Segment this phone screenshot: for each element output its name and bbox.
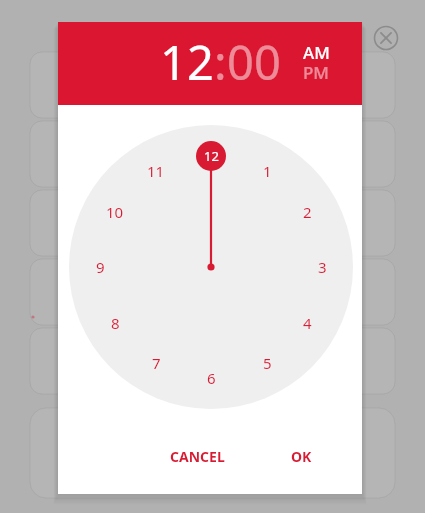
button[interactable]: OK (291, 447, 312, 466)
staticText: CANCEL (170, 447, 225, 466)
button[interactable]: 00 (227, 30, 281, 94)
button[interactable]: 11 (142, 161, 169, 181)
button[interactable]: CANCEL (170, 447, 225, 466)
button[interactable]: PM (303, 61, 329, 84)
staticText: 2 (303, 202, 312, 222)
button[interactable]: 9 (91, 257, 109, 277)
staticText: 5 (263, 353, 272, 373)
staticText: PM (303, 61, 329, 84)
staticText: 6 (207, 368, 216, 388)
button[interactable]: 12 (160, 30, 214, 94)
staticText: 9 (96, 257, 105, 277)
staticText: 11 (147, 161, 165, 181)
staticText: AM (303, 41, 330, 64)
button[interactable]: 12 (198, 146, 225, 166)
staticText: 3 (318, 257, 327, 277)
button[interactable]: 6 (202, 368, 220, 388)
staticText: 12 (204, 147, 219, 165)
staticText: 7 (152, 353, 161, 373)
staticText: 12 (160, 30, 214, 94)
staticText: 1 (263, 161, 272, 181)
button[interactable]: 4 (298, 313, 316, 333)
button[interactable]: 3 (313, 257, 331, 277)
button[interactable]: 8 (106, 313, 124, 333)
button[interactable]: 10 (101, 202, 128, 222)
button[interactable]: 1 (258, 161, 276, 181)
button[interactable]: 5 (258, 353, 276, 373)
button[interactable]: Close (371, 23, 401, 53)
staticText: 10 (106, 202, 124, 222)
staticText: OK (291, 447, 312, 466)
button[interactable]: 2 (298, 202, 316, 222)
button[interactable]: 7 (147, 353, 165, 373)
staticText: 4 (303, 313, 312, 333)
staticText: : (214, 30, 227, 94)
button[interactable]: AM (303, 41, 330, 64)
staticText: 8 (111, 313, 120, 333)
staticText: 00 (227, 30, 281, 94)
